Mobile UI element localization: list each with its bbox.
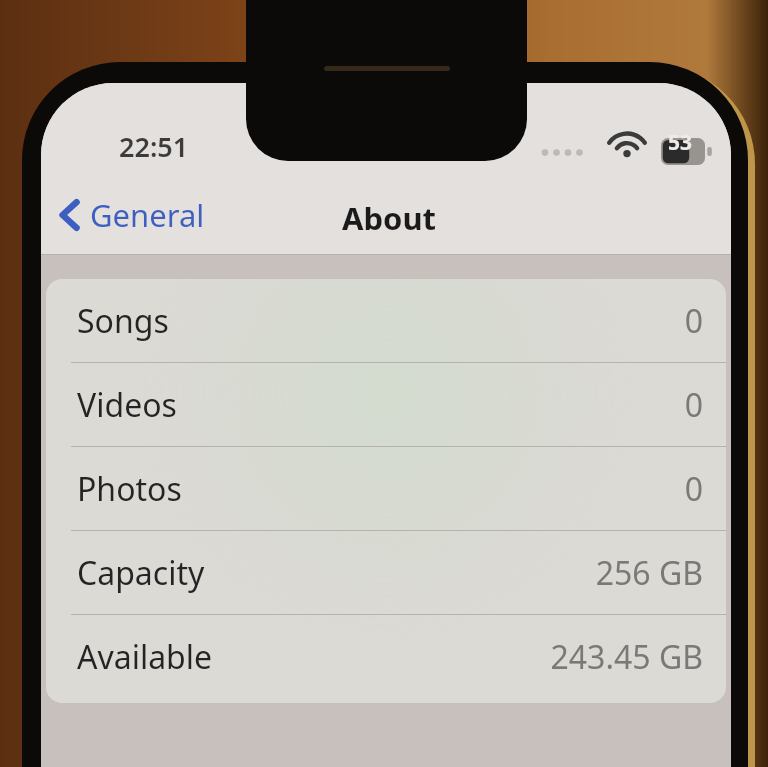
staticText: 0 [684, 467, 703, 511]
staticText: 0 [684, 383, 703, 427]
staticText: Photos [77, 467, 182, 511]
button[interactable]: Capacity [46, 531, 726, 614]
staticText: Videos [77, 383, 177, 427]
staticText: Songs [77, 299, 169, 343]
other: Front camera and sensors [0, 0, 768, 767]
staticText: Available [77, 635, 213, 679]
button[interactable]: Songs [46, 279, 726, 362]
staticText: General [90, 194, 205, 236]
staticText: 53 [668, 128, 693, 157]
button[interactable]: Photos [46, 447, 726, 530]
staticText: About [342, 197, 437, 239]
button[interactable]: Videos [46, 363, 726, 446]
button[interactable]: Available [46, 615, 726, 698]
staticText: 0 [684, 299, 703, 343]
staticText: 22:51 [119, 128, 189, 165]
staticText: 256 GB [595, 551, 703, 595]
staticText: Capacity [77, 551, 205, 595]
staticText: 243.45 GB [550, 635, 703, 679]
button[interactable]: General [51, 189, 213, 241]
